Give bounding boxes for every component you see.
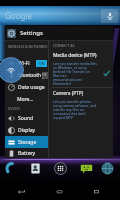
button[interactable]: Phone xyxy=(4,161,18,175)
button[interactable]: People xyxy=(28,161,42,175)
button[interactable]: Battery xyxy=(5,148,48,158)
staticText: Wi-Fi xyxy=(18,60,30,67)
staticText: OFF xyxy=(42,72,48,79)
staticText: on Windows, or using xyxy=(53,65,87,69)
staticText: ON xyxy=(39,61,45,66)
button[interactable]: Wi-Fi xyxy=(5,57,48,69)
button[interactable]: Data usage xyxy=(5,81,48,93)
staticText: Lets you transfer media files xyxy=(53,61,97,65)
button[interactable]: Display xyxy=(5,124,48,136)
staticText: DEVICE xyxy=(8,106,20,111)
staticText: Sound xyxy=(18,115,34,122)
button[interactable]: ON xyxy=(36,60,47,67)
staticText: WIRELESS & NETWORKS xyxy=(8,44,48,49)
staticText: computers that don't xyxy=(53,111,86,115)
staticText: Display xyxy=(18,127,36,134)
staticText: CONNECT AS xyxy=(53,43,75,48)
staticText: Mac (see xyxy=(53,73,67,77)
button[interactable]: Voice search xyxy=(101,9,118,23)
staticText: Google xyxy=(5,10,32,21)
staticText: Bluetooth xyxy=(18,72,42,79)
button[interactable]: More... xyxy=(5,93,48,105)
staticText: More... xyxy=(17,96,34,103)
staticText: Camera (PTP) xyxy=(53,90,84,97)
staticText: using camera software, and xyxy=(53,103,96,107)
staticText: transfer any files on xyxy=(53,107,84,111)
button[interactable]: Browser xyxy=(100,161,114,175)
button[interactable]: Messaging xyxy=(79,161,93,175)
button[interactable]: Google xyxy=(0,6,120,25)
button[interactable]: OFF xyxy=(42,72,48,79)
button[interactable]: Sound xyxy=(5,112,48,124)
staticText: Lets you transfer photos xyxy=(53,99,91,103)
button[interactable]: Media device (MTP) xyxy=(49,52,113,85)
staticText: Data usage xyxy=(18,84,45,91)
staticText: Media device (MTP) xyxy=(53,52,97,59)
staticText: Battery xyxy=(18,150,36,157)
button[interactable]: Home xyxy=(52,182,66,200)
staticText: Storage xyxy=(18,139,37,146)
button[interactable]: Back xyxy=(14,182,28,200)
button[interactable]: Camera (PTP) xyxy=(49,90,113,119)
button[interactable]: Storage xyxy=(5,136,48,148)
staticText: Settings xyxy=(20,29,43,37)
staticText: support MTP xyxy=(53,115,73,119)
staticText: www.android.com/ xyxy=(53,77,83,81)
button[interactable]: Apps xyxy=(53,161,67,175)
button[interactable]: Recent apps xyxy=(89,182,103,200)
button[interactable]: Bluetooth xyxy=(5,69,48,81)
staticText: Android File Transfer on xyxy=(53,69,91,73)
staticText: filetransfer) xyxy=(53,81,71,85)
